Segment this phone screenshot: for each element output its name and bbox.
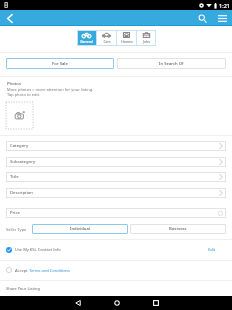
- staticText: Homes: [121, 39, 133, 44]
- button[interactable]: Accept: [0, 260, 232, 280]
- button[interactable]: Individual: [32, 224, 128, 234]
- staticText: 1:21: [219, 2, 230, 9]
- button[interactable]: Subcategory: [6, 157, 226, 167]
- staticText: Individual: [70, 226, 90, 232]
- button[interactable]: Use My KSL Contact Info: [0, 239, 232, 260]
- staticText: Terms and Conditions: [29, 268, 70, 273]
- button[interactable]: Add photo: [6, 102, 33, 129]
- button[interactable]: Recents: [136, 296, 175, 310]
- button[interactable]: In Search Of: [117, 58, 226, 69]
- button[interactable]: Homes: [117, 30, 136, 46]
- staticText: Price: [10, 210, 20, 216]
- staticText: In Search Of: [159, 61, 184, 67]
- button[interactable]: Back: [0, 10, 20, 26]
- staticText: Edit: [208, 247, 216, 252]
- staticText: Photos: [7, 81, 21, 87]
- button[interactable]: Title: [6, 172, 226, 182]
- button[interactable]: Search: [192, 10, 213, 26]
- button[interactable]: For Sale: [6, 58, 114, 69]
- staticText: Business: [169, 226, 187, 232]
- button[interactable]: Home: [97, 296, 136, 310]
- button[interactable]: Cars: [97, 30, 116, 46]
- staticText: Jobs: [143, 39, 150, 44]
- staticText: General: [80, 39, 93, 44]
- button[interactable]: General: [77, 30, 96, 46]
- staticText: Cars: [103, 39, 111, 44]
- staticText: Subcategory: [10, 159, 36, 165]
- staticText: Accept: [15, 268, 29, 273]
- staticText: Seller Type: [6, 227, 27, 232]
- staticText: Share Your Listing: [6, 286, 40, 291]
- staticText: Use My KSL Contact Info: [15, 247, 61, 252]
- button[interactable]: Jobs: [137, 30, 156, 46]
- button[interactable]: Share Your Listing: [0, 280, 232, 296]
- button[interactable]: Back: [58, 296, 97, 310]
- staticText: Title: [10, 174, 19, 180]
- button[interactable]: Edit: [206, 247, 226, 252]
- button[interactable]: Business: [130, 224, 226, 234]
- button[interactable]: Price: [6, 208, 226, 218]
- button[interactable]: Menu: [213, 10, 232, 26]
- staticText: Description: [10, 190, 33, 196]
- staticText: Tap photo to edit.: [7, 92, 41, 97]
- staticText: Category: [10, 143, 29, 149]
- staticText: For Sale: [52, 61, 68, 67]
- button[interactable]: Description: [6, 188, 226, 198]
- button[interactable]: Category: [6, 141, 226, 151]
- staticText: More photos = more attention for your li…: [7, 87, 94, 92]
